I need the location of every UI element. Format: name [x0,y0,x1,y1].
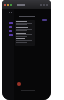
button[interactable] [9,22,13,24]
button[interactable] [42,19,47,21]
button[interactable] [9,34,13,36]
button[interactable] [9,26,12,28]
button[interactable] [9,30,12,32]
